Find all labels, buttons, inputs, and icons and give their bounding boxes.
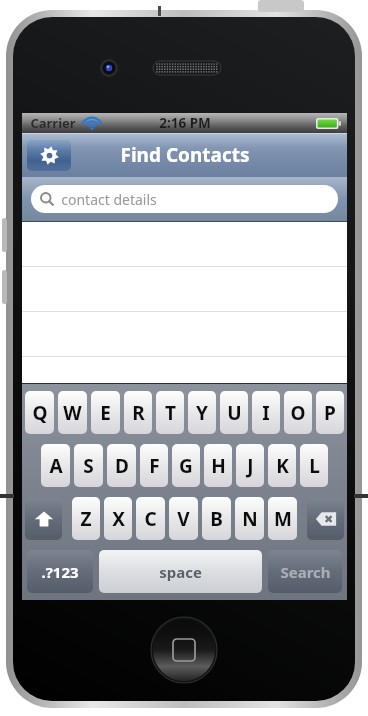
staticText: U <box>227 400 242 426</box>
staticText: X <box>112 506 125 532</box>
staticText: J <box>247 453 254 479</box>
button[interactable]: K <box>268 444 296 487</box>
staticText: .?123 <box>41 562 79 582</box>
staticText: 2:16 PM <box>159 114 211 132</box>
staticText: Q <box>32 400 48 426</box>
staticText: N <box>242 506 258 532</box>
staticText: V <box>177 506 190 532</box>
button[interactable]: T <box>156 391 184 434</box>
staticText: Y <box>196 400 208 426</box>
button[interactable]: H <box>204 444 232 487</box>
staticText: K <box>276 453 289 479</box>
button[interactable]: P <box>316 391 344 434</box>
staticText: Search <box>280 562 331 582</box>
staticText: D <box>115 453 129 479</box>
button[interactable]: space <box>99 550 262 593</box>
staticText: R <box>132 400 145 426</box>
button[interactable]: Shift <box>25 497 62 540</box>
staticText: H <box>211 453 226 479</box>
button[interactable]: N <box>235 497 264 540</box>
staticText: space <box>159 562 202 582</box>
button[interactable]: W <box>58 391 87 434</box>
button[interactable]: Q <box>25 391 54 434</box>
button[interactable]: Search <box>268 550 342 593</box>
button[interactable]: R <box>124 391 152 434</box>
button[interactable]: E <box>91 391 120 434</box>
staticText: contact details <box>61 190 157 209</box>
button[interactable]: X <box>104 497 132 540</box>
staticText: L <box>309 453 320 479</box>
staticText: A <box>49 453 63 479</box>
staticText: B <box>210 506 223 532</box>
button[interactable]: .?123 <box>27 550 93 593</box>
staticText: Find Contacts <box>120 142 250 168</box>
button[interactable]: F <box>140 444 168 487</box>
staticText: P <box>324 400 336 426</box>
button[interactable]: V <box>169 497 198 540</box>
staticText: O <box>290 400 306 426</box>
button[interactable]: J <box>236 444 264 487</box>
staticText: S <box>83 453 94 479</box>
staticText: F <box>149 453 160 479</box>
button[interactable]: A <box>41 444 70 487</box>
button[interactable]: Z <box>72 497 100 540</box>
button[interactable]: Settings <box>27 140 71 171</box>
button[interactable]: L <box>300 444 328 487</box>
button[interactable]: I <box>252 391 280 434</box>
button[interactable]: U <box>220 391 248 434</box>
button[interactable]: B <box>202 497 231 540</box>
staticText: Carrier <box>30 114 76 132</box>
staticText: I <box>262 400 270 426</box>
button[interactable]: M <box>268 497 297 540</box>
staticText: Z <box>80 506 92 532</box>
button[interactable]: Backspace <box>307 497 344 540</box>
button[interactable]: D <box>107 444 136 487</box>
button[interactable]: C <box>136 497 165 540</box>
button[interactable]: contact details <box>31 185 338 213</box>
button[interactable]: O <box>284 391 312 434</box>
staticText: G <box>179 453 193 479</box>
button[interactable]: G <box>172 444 200 487</box>
button[interactable]: Y <box>188 391 216 434</box>
button[interactable]: S <box>74 444 103 487</box>
staticText: T <box>165 400 176 426</box>
staticText: C <box>144 506 157 532</box>
staticText: W <box>63 400 82 426</box>
staticText: E <box>100 400 111 426</box>
staticText: M <box>274 506 292 532</box>
